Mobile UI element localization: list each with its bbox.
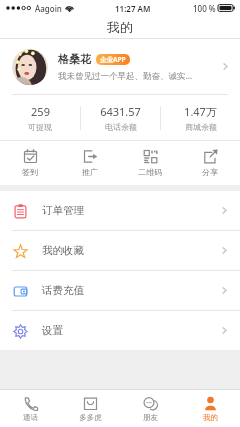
other: 二维码 bbox=[143, 149, 158, 164]
staticText: Aagoin bbox=[35, 3, 62, 14]
button[interactable]: 格桑花 bbox=[0, 39, 240, 94]
button[interactable]: 签到 bbox=[0, 141, 60, 185]
staticText: 朋友 bbox=[143, 413, 158, 422]
staticText: 我的 bbox=[107, 19, 133, 35]
staticText: 11:27 AM bbox=[115, 3, 151, 14]
other: 推广 bbox=[83, 149, 98, 164]
button[interactable]: 6431.57 bbox=[81, 104, 160, 132]
staticText: 话费充值 bbox=[42, 284, 84, 297]
button[interactable]: 朋友 bbox=[120, 390, 180, 427]
staticText: 设置 bbox=[42, 324, 63, 337]
staticText: 我的收藏 bbox=[42, 244, 84, 257]
button[interactable]: 分享 bbox=[180, 141, 240, 185]
button[interactable]: 1.47万 bbox=[161, 104, 240, 132]
staticText: 电话余额 bbox=[105, 122, 137, 132]
button[interactable]: 二维码 bbox=[120, 141, 180, 185]
button[interactable]: 我的收藏 bbox=[0, 231, 240, 270]
other: 多多虎 bbox=[83, 396, 98, 411]
button[interactable]: 订单管理 bbox=[0, 191, 240, 230]
staticText: 订单管理 bbox=[42, 204, 84, 217]
staticText: 多多虎 bbox=[79, 413, 102, 422]
button[interactable]: 通话 bbox=[0, 390, 60, 427]
button[interactable]: 259 bbox=[0, 104, 80, 132]
button[interactable]: 设置 bbox=[0, 311, 240, 350]
staticText: 商城余额 bbox=[185, 122, 217, 132]
staticText: 格桑花 bbox=[58, 52, 91, 66]
staticText: 我的 bbox=[203, 413, 218, 422]
staticText: 1.47万 bbox=[184, 104, 217, 119]
button[interactable]: 多多虎 bbox=[60, 390, 120, 427]
staticText: 6431.57 bbox=[100, 104, 141, 119]
staticText: 可提现 bbox=[28, 122, 52, 132]
staticText: 259 bbox=[31, 104, 50, 119]
button[interactable]: 推广 bbox=[60, 141, 120, 185]
staticText: 二维码 bbox=[138, 167, 162, 177]
staticText: 我未曾见过一个早起、勤奋、诚实… bbox=[58, 70, 193, 82]
other: 通话 bbox=[23, 396, 38, 411]
staticText: 企业APP bbox=[100, 55, 126, 64]
button[interactable]: 我的 bbox=[180, 390, 240, 427]
staticText: 分享 bbox=[202, 167, 218, 177]
other: 朋友 bbox=[143, 396, 158, 411]
other: 我的 bbox=[203, 396, 218, 411]
staticText: 签到 bbox=[22, 167, 38, 177]
staticText: 100 % bbox=[193, 3, 216, 14]
other: 签到 bbox=[23, 149, 38, 164]
staticText: 通话 bbox=[23, 413, 38, 422]
button[interactable]: 话费充值 bbox=[0, 271, 240, 310]
other: 分享 bbox=[203, 149, 218, 164]
staticText: 推广 bbox=[82, 167, 98, 177]
